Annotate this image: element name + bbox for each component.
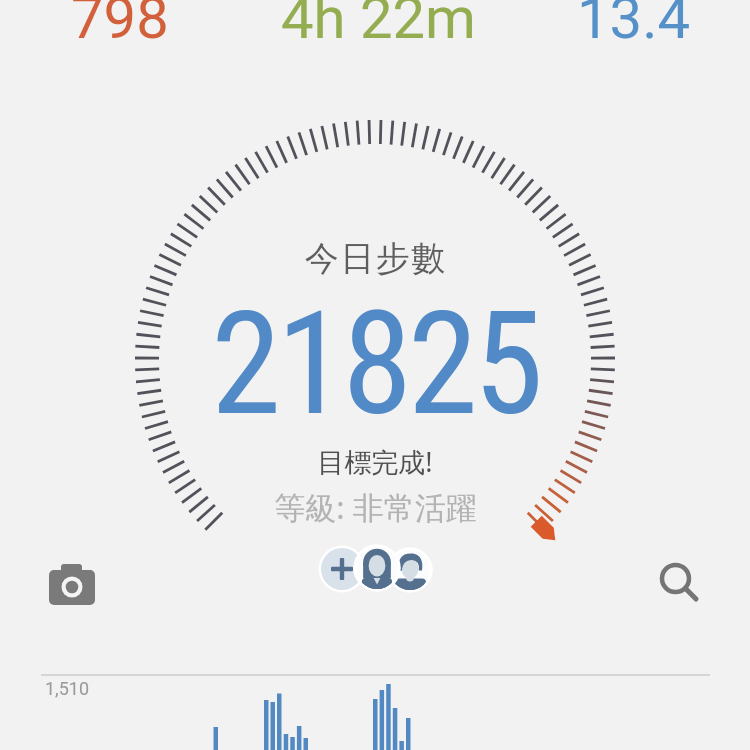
button[interactable]: [41, 556, 103, 614]
staticText: 4h 22m: [281, 0, 476, 52]
staticText: 798: [71, 0, 169, 52]
button[interactable]: 4h 22m: [268, 0, 488, 52]
button[interactable]: 13.4: [524, 0, 744, 52]
staticText: 目標完成!: [317, 443, 433, 480]
button[interactable]: [316, 543, 436, 595]
staticText: 等級: 非常活躍: [274, 486, 477, 528]
staticText: 今日步數: [304, 237, 446, 280]
staticText: 13.4: [577, 0, 691, 52]
staticText: 21825: [211, 281, 539, 447]
button[interactable]: 798: [10, 0, 230, 52]
staticText: 1,510: [45, 678, 90, 699]
button[interactable]: [653, 556, 703, 608]
